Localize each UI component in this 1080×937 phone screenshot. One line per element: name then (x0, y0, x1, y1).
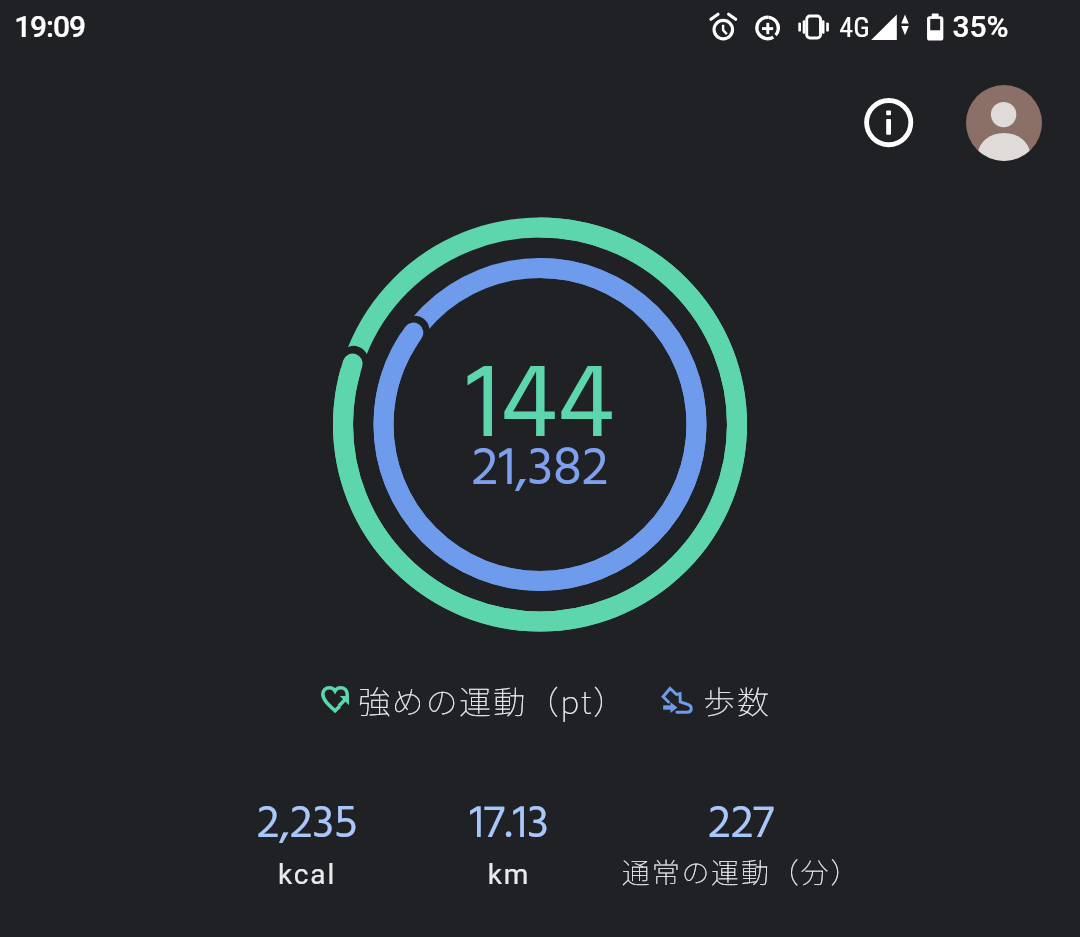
staticText: 35% (952, 9, 1009, 44)
button[interactable]: Info (858, 93, 919, 154)
button[interactable]: 227 (591, 788, 891, 862)
staticText: 歩数 (703, 677, 771, 723)
button[interactable]: 17.13 (409, 788, 609, 862)
staticText: 227 (591, 788, 891, 862)
staticText: 144 (370, 324, 710, 494)
staticText: 17.13 (409, 788, 609, 862)
button[interactable]: 歩数 (661, 677, 771, 723)
staticText: 4G (839, 11, 870, 44)
staticText: 通常の運動（分） (591, 851, 891, 892)
staticText: 21,382 (370, 427, 710, 513)
staticText: 強めの運動（pt） (358, 677, 627, 723)
staticText: km (409, 858, 609, 891)
staticText: kcal (187, 858, 427, 891)
button[interactable]: 強めの運動（pt） (318, 677, 627, 723)
staticText: 19:09 (14, 9, 85, 44)
button[interactable]: 2,235 (187, 788, 427, 862)
staticText: 2,235 (187, 788, 427, 862)
button[interactable]: Profile (966, 85, 1042, 161)
